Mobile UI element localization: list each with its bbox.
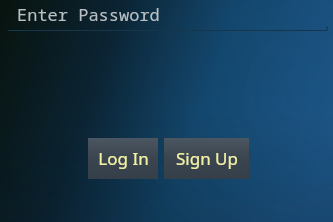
staticText: Log In (98, 147, 149, 170)
staticText: Enter Password (17, 3, 160, 26)
button[interactable]: Enter Password (8, 0, 327, 31)
button[interactable]: Sign Up (164, 138, 249, 179)
button[interactable]: Log In (88, 138, 158, 179)
staticText: Sign Up (176, 147, 238, 170)
